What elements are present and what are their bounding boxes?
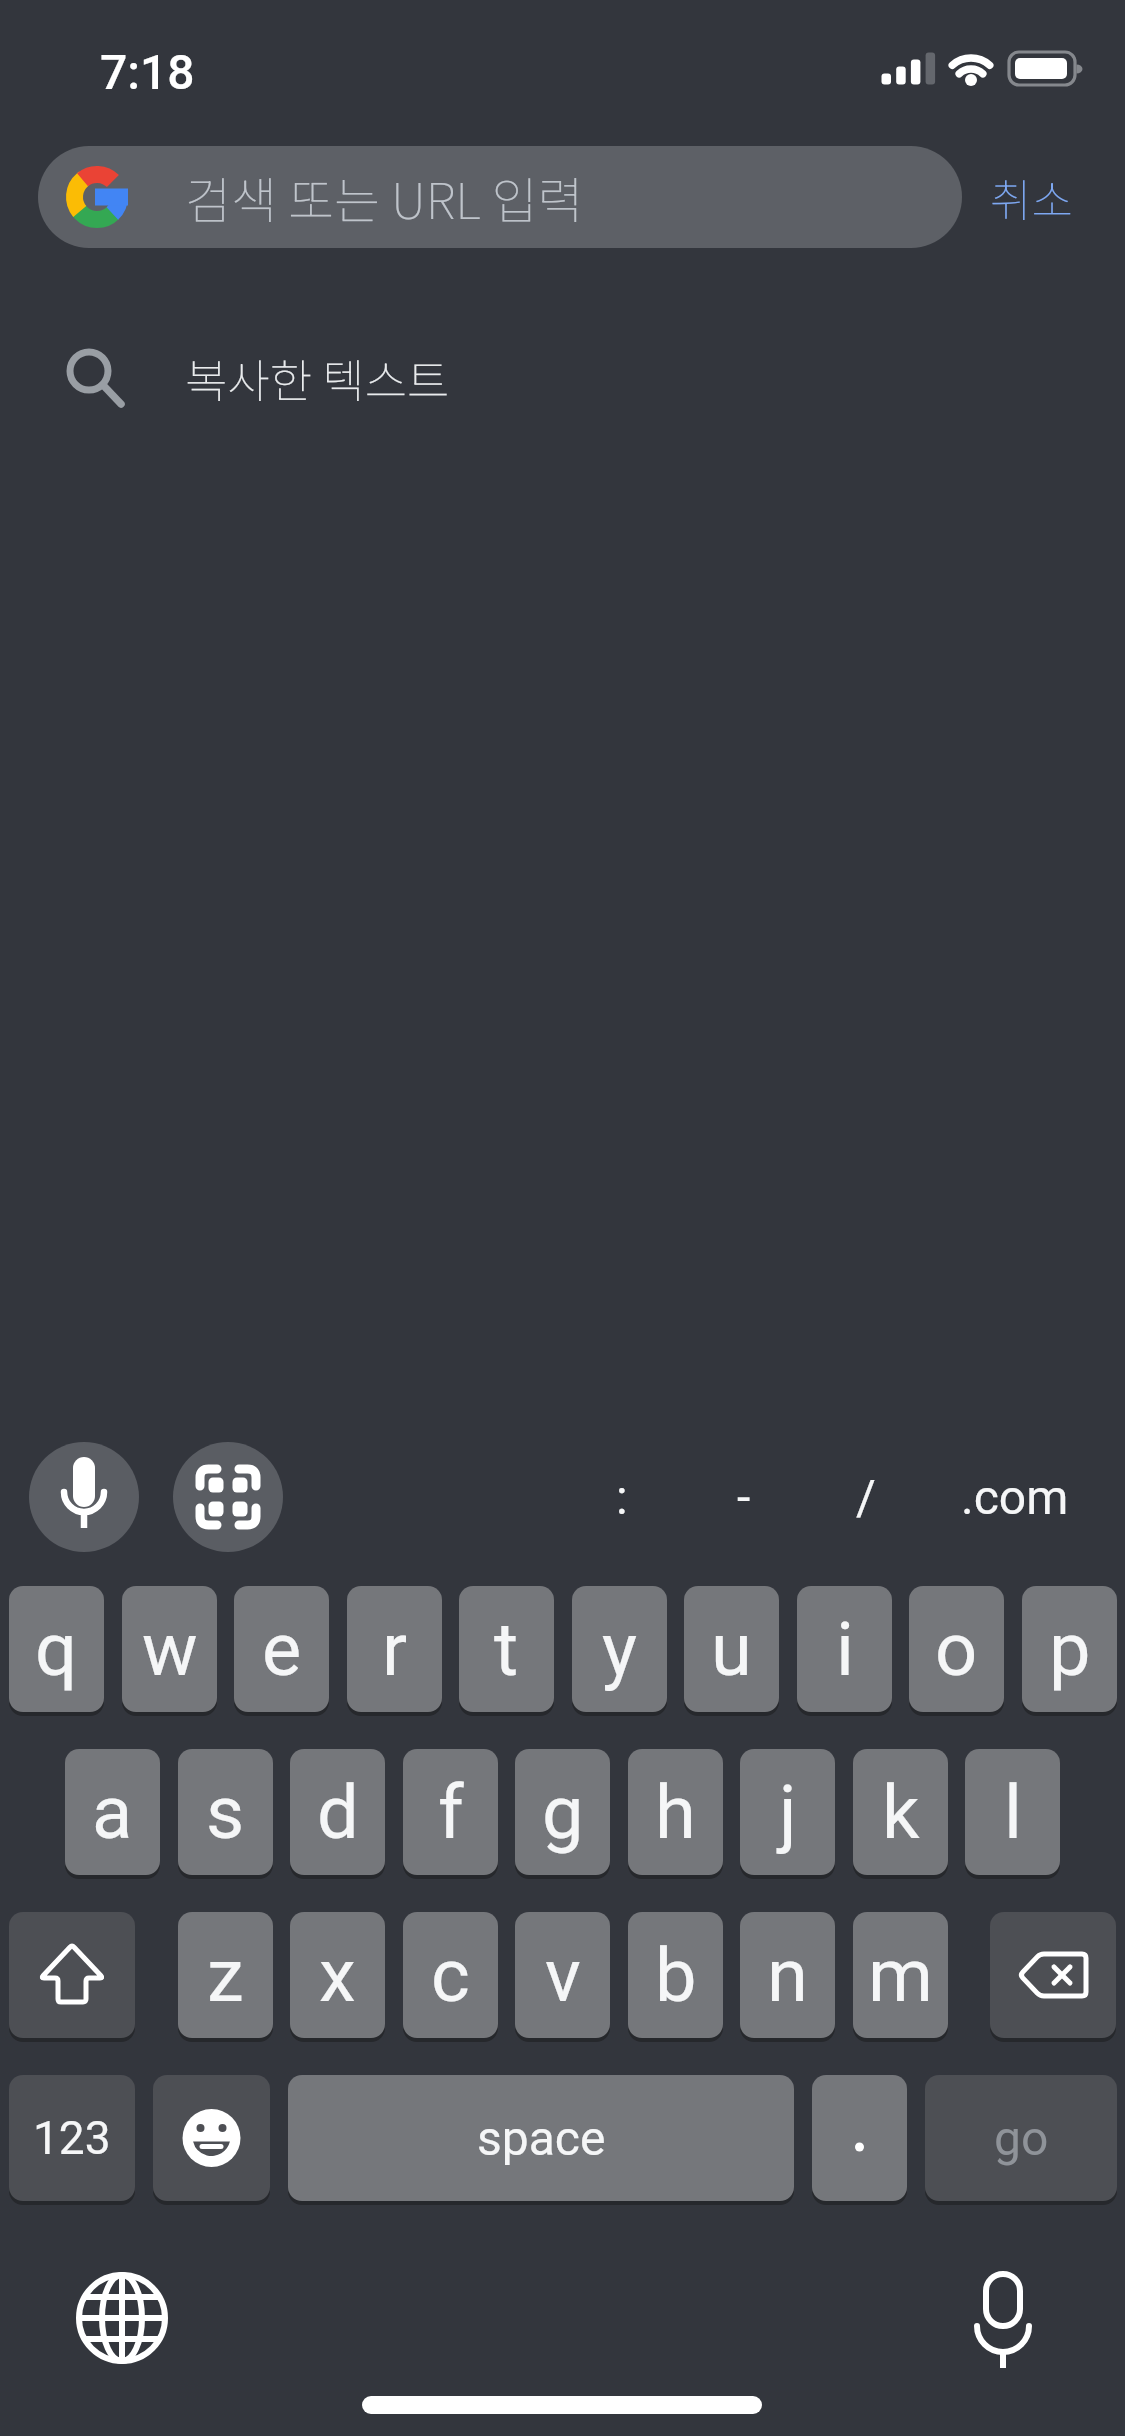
button[interactable] <box>66 2262 178 2374</box>
button[interactable]: w <box>122 1586 217 1712</box>
button[interactable]: b <box>628 1912 723 2038</box>
staticText: 검색 또는 URL 입력 <box>185 161 584 233</box>
staticText: g <box>542 1769 584 1856</box>
button[interactable] <box>953 2258 1053 2368</box>
button[interactable]: k <box>853 1749 948 1875</box>
button[interactable]: x <box>290 1912 385 2038</box>
button[interactable]: r <box>347 1586 442 1712</box>
staticText: t <box>494 1606 519 1693</box>
staticText: v <box>545 1932 581 2019</box>
button[interactable]: n <box>740 1912 835 2038</box>
staticText: : <box>616 1469 628 1525</box>
staticText: k <box>882 1769 920 1856</box>
button[interactable]: z <box>178 1912 273 2038</box>
staticText: b <box>655 1932 697 2019</box>
button[interactable]: q <box>9 1586 104 1712</box>
staticText: 복사한 텍스트 <box>185 345 450 412</box>
staticText: q <box>35 1606 78 1693</box>
button[interactable]: c <box>403 1912 498 2038</box>
staticText: u <box>711 1606 752 1693</box>
button[interactable]: f <box>403 1749 498 1875</box>
button[interactable]: p <box>1022 1586 1117 1712</box>
button[interactable]: 123 <box>9 2075 135 2201</box>
button[interactable] <box>153 2075 270 2201</box>
button[interactable] <box>29 1442 139 1552</box>
staticText: 취소 <box>990 165 1073 230</box>
button[interactable]: / <box>836 1447 896 1547</box>
staticText: x <box>319 1932 356 2019</box>
staticText: go <box>994 2110 1049 2166</box>
staticText: 7:18 <box>100 44 195 94</box>
staticText: n <box>767 1932 808 2019</box>
button[interactable]: 복사한 텍스트 <box>0 326 1125 430</box>
staticText: 123 <box>33 2111 111 2165</box>
button[interactable]: m <box>853 1912 948 2038</box>
staticText: c <box>431 1932 470 2019</box>
button[interactable]: d <box>290 1749 385 1875</box>
button[interactable]: t <box>459 1586 554 1712</box>
button[interactable]: h <box>628 1749 723 1875</box>
button[interactable]: j <box>740 1749 835 1875</box>
button[interactable] <box>990 1912 1116 2038</box>
staticText: i <box>836 1606 854 1693</box>
button[interactable]: v <box>515 1912 610 2038</box>
staticText: / <box>856 1469 876 1525</box>
button[interactable] <box>812 2075 907 2201</box>
staticText: space <box>477 2110 606 2166</box>
button[interactable] <box>173 1442 283 1552</box>
staticText: l <box>1004 1769 1022 1856</box>
button[interactable]: g <box>515 1749 610 1875</box>
button[interactable]: 취소 <box>971 146 1091 248</box>
button[interactable] <box>38 146 962 248</box>
staticText: s <box>206 1769 245 1856</box>
staticText: y <box>602 1606 638 1693</box>
button[interactable] <box>9 1912 135 2038</box>
button[interactable]: .com <box>945 1447 1085 1547</box>
staticText: j <box>779 1769 797 1856</box>
staticText: m <box>868 1932 933 2019</box>
staticText: f <box>438 1769 464 1856</box>
button[interactable]: u <box>684 1586 779 1712</box>
button[interactable]: : <box>592 1447 652 1547</box>
staticText: o <box>935 1606 978 1693</box>
staticText: z <box>207 1932 244 2019</box>
button[interactable]: o <box>909 1586 1004 1712</box>
button[interactable]: l <box>965 1749 1060 1875</box>
staticText: d <box>317 1769 359 1856</box>
button[interactable]: - <box>714 1447 774 1547</box>
button[interactable]: go <box>925 2075 1117 2201</box>
staticText: p <box>1049 1606 1091 1693</box>
staticText: a <box>92 1769 133 1856</box>
staticText: h <box>655 1769 696 1856</box>
button[interactable]: i <box>797 1586 892 1712</box>
button[interactable]: y <box>572 1586 667 1712</box>
button[interactable]: e <box>234 1586 329 1712</box>
staticText: e <box>262 1606 302 1693</box>
staticText: .com <box>961 1469 1069 1525</box>
staticText: r <box>382 1606 408 1693</box>
staticText: w <box>142 1606 198 1693</box>
button[interactable]: a <box>65 1749 160 1875</box>
button[interactable]: space <box>288 2075 794 2201</box>
button[interactable]: s <box>178 1749 273 1875</box>
staticText: - <box>737 1469 751 1525</box>
